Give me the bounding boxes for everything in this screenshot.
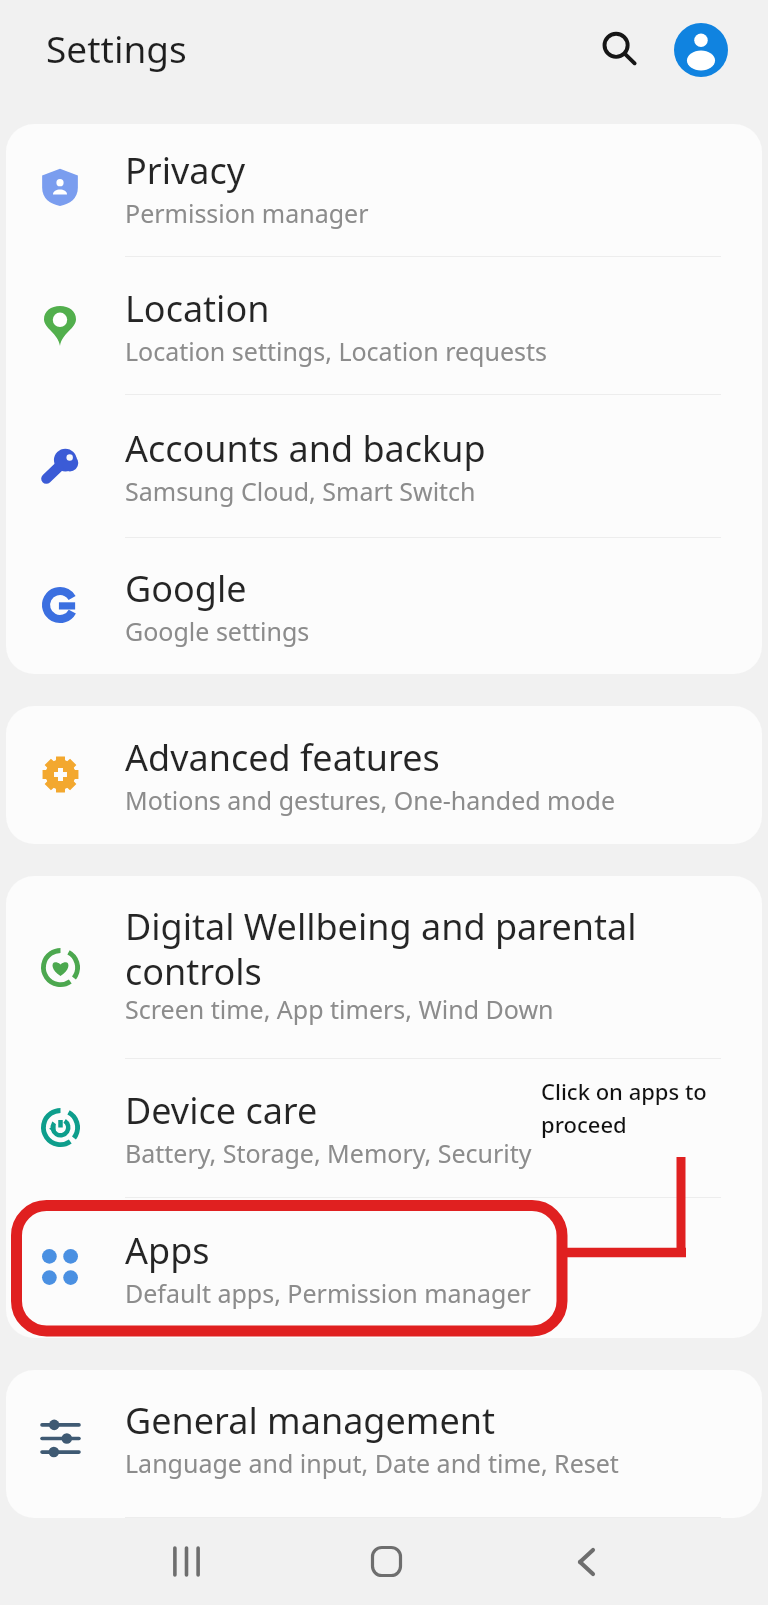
button[interactable]: Account <box>673 22 729 78</box>
staticText: Language and input, Date and time, Reset <box>125 1446 619 1480</box>
staticText: Accounts and backup <box>125 424 486 473</box>
staticText: Location <box>125 284 270 333</box>
staticText: Digital Wellbeing and parental controls <box>125 902 637 996</box>
staticText: Click on apps to proceed <box>541 1076 707 1139</box>
button[interactable]: Location <box>6 257 762 395</box>
staticText: Battery, Storage, Memory, Security <box>125 1136 532 1170</box>
button[interactable]: Search <box>592 20 648 76</box>
staticText: Location settings, Location requests <box>125 334 548 368</box>
staticText: Google settings <box>125 614 310 648</box>
staticText: Motions and gestures, One-handed mode <box>125 783 616 817</box>
button[interactable]: Apps <box>6 1198 762 1338</box>
button[interactable]: Device care <box>6 1059 762 1198</box>
staticText: Device care <box>125 1086 318 1135</box>
button[interactable]: Privacy <box>6 124 762 257</box>
staticText: General management <box>125 1396 496 1445</box>
staticText: Privacy <box>125 146 246 195</box>
staticText: Permission manager <box>125 196 369 230</box>
staticText: Screen time, App timers, Wind Down <box>125 992 554 1026</box>
button[interactable]: Digital Wellbeing and parental controls <box>6 876 762 1059</box>
staticText: Default apps, Permission manager <box>125 1276 531 1310</box>
staticText: Apps <box>125 1226 210 1275</box>
staticText: Advanced features <box>125 733 440 782</box>
staticText: Google <box>125 564 247 613</box>
button[interactable]: Back <box>526 1518 646 1605</box>
button[interactable]: Recent apps <box>126 1518 246 1605</box>
staticText: Samsung Cloud, Smart Switch <box>125 474 476 508</box>
button[interactable]: Google <box>6 538 762 674</box>
button[interactable]: General management <box>6 1370 762 1518</box>
button[interactable]: Advanced features <box>6 706 762 844</box>
button[interactable]: Home <box>326 1518 446 1605</box>
button[interactable]: Accounts and backup <box>6 395 762 538</box>
staticText: Settings <box>46 23 187 73</box>
